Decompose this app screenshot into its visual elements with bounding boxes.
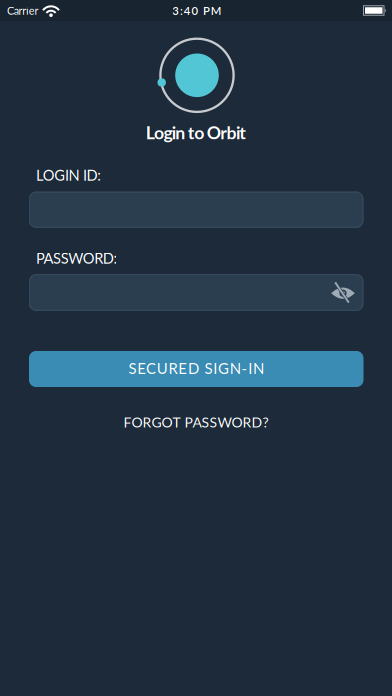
staticText: Carrier	[7, 4, 38, 17]
staticText: PASSWORD:	[36, 249, 117, 267]
button[interactable]: SECURED SIGN-IN	[29, 351, 363, 387]
staticText: Login to Orbit	[146, 122, 246, 143]
button[interactable]	[330, 280, 356, 306]
button[interactable]: FORGOT PASSWORD?	[0, 412, 392, 432]
staticText: 3:40 PM	[172, 4, 222, 17]
staticText: LOGIN ID:	[36, 166, 101, 184]
staticText: FORGOT PASSWORD?	[123, 414, 268, 430]
staticText: SECURED SIGN-IN	[128, 359, 264, 377]
button[interactable]	[29, 274, 363, 311]
